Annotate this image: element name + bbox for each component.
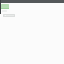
- button[interactable]: [1, 4, 9, 9]
- button[interactable]: Card: [3, 14, 15, 17]
